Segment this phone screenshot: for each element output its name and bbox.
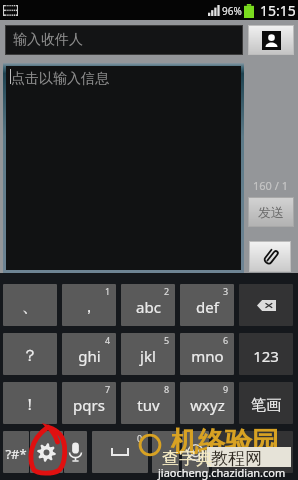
staticText: 5 [164, 334, 170, 346]
staticText: ， [81, 297, 97, 317]
staticText: pqrs [73, 395, 105, 415]
button[interactable]: 笔画 [239, 382, 293, 424]
button[interactable]: ！ [3, 382, 57, 424]
button[interactable]: mic [64, 431, 87, 473]
staticText: ghi [78, 346, 101, 366]
staticText: ？ [22, 346, 38, 366]
button[interactable]: 发送 [249, 198, 293, 226]
staticText: 123 [253, 346, 279, 366]
button[interactable]: emoji [182, 431, 209, 473]
button[interactable]: 点击以输入信息 [6, 66, 241, 270]
staticText: 输入收件人 [13, 31, 83, 49]
staticText: abc [136, 297, 161, 317]
staticText: 点击以输入信息 [11, 70, 109, 88]
button[interactable]: 4 [62, 333, 116, 375]
button[interactable]: 输入收件人 [6, 26, 242, 54]
staticText: ！ [22, 395, 38, 415]
button[interactable]: 123 [239, 333, 293, 375]
button[interactable]: 9 [180, 382, 234, 424]
staticText: jkl [140, 346, 156, 366]
button[interactable]: enter [212, 431, 293, 473]
button[interactable]: 、 [3, 284, 57, 326]
button[interactable]: gear [30, 431, 63, 473]
button[interactable]: Choose contact [249, 26, 293, 54]
staticText: 4 [105, 334, 111, 346]
staticText: wxyz [190, 395, 225, 415]
staticText: 1 [105, 285, 111, 297]
staticText: 、 [22, 297, 38, 317]
button[interactable]: ?#* [3, 431, 29, 473]
staticText: 发送 [258, 204, 284, 220]
button[interactable]: 5 [121, 333, 175, 375]
staticText: def [196, 297, 219, 317]
staticText: 9 [223, 383, 229, 395]
staticText: tuv [137, 395, 160, 415]
staticText: jiaocheng.chazidian.com [158, 465, 286, 480]
staticText: 96% [222, 4, 242, 18]
button[interactable]: 3 [180, 284, 234, 326]
staticText: 3 [223, 285, 229, 297]
staticText: 8 [164, 383, 170, 395]
staticText: 160 / 1 [253, 178, 288, 193]
button[interactable]: 2 [121, 284, 175, 326]
button[interactable]: 1 [62, 284, 116, 326]
staticText: mno [191, 346, 224, 366]
staticText: ?#* [5, 445, 27, 463]
staticText: 2 [164, 285, 170, 297]
staticText: 15:15 [260, 1, 296, 20]
button[interactable]: ？ [3, 333, 57, 375]
staticText: 教程网 [211, 448, 262, 469]
staticText: 6 [223, 334, 229, 346]
button[interactable]: 6 [180, 333, 234, 375]
button[interactable]: backspace [239, 284, 293, 326]
staticText: ， [158, 444, 174, 464]
staticText: 查字典 [162, 448, 213, 469]
staticText: 7 [105, 383, 111, 395]
button[interactable]: 7 [62, 382, 116, 424]
staticText: 0 [137, 432, 143, 444]
button[interactable]: ， [152, 431, 179, 473]
staticText: 机络验园 [171, 425, 279, 459]
staticText: 笔画 [251, 396, 281, 415]
button[interactable]: 8 [121, 382, 175, 424]
button[interactable]: space [92, 431, 148, 473]
button[interactable]: Attach file [250, 242, 290, 271]
